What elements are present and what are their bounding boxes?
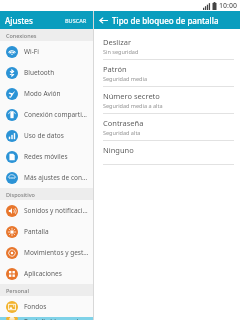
button[interactable]: Wi-Fi (0, 41, 93, 62)
button[interactable]: Conexión compartida. (0, 104, 93, 125)
button[interactable]: Fondos (0, 296, 93, 317)
staticText: Conexiones (6, 32, 37, 39)
staticText: Pantalla (24, 227, 49, 236)
staticText: Personal (6, 287, 29, 294)
staticText: Sin seguridad (103, 48, 139, 55)
button[interactable]: Uso de datos (0, 125, 93, 146)
button[interactable]: Número secreto (94, 87, 240, 113)
button[interactable]: Bluetooth (0, 62, 93, 83)
staticText: Conexión compartida. (24, 110, 90, 119)
staticText: Movimientos y gestos (24, 248, 90, 257)
button[interactable]: Deslizar (94, 33, 240, 59)
staticText: Patrón (103, 64, 127, 74)
staticText: Seguridad media (103, 75, 148, 82)
staticText: Uso de datos (24, 131, 64, 140)
staticText: Deslizar (103, 37, 131, 47)
staticText: Bluetooth (24, 68, 55, 77)
button[interactable]: Back (94, 11, 112, 29)
staticText: Sonidos y notificaciones (24, 206, 90, 215)
button[interactable]: Aplicaciones (0, 263, 93, 284)
staticText: 10:00 (219, 1, 237, 11)
button[interactable]: BUSCAR (64, 15, 88, 26)
button[interactable]: Redes móviles (0, 146, 93, 167)
staticText: Ninguno (103, 145, 134, 155)
button[interactable]: Pantalla (0, 221, 93, 242)
staticText: Ajustes (5, 15, 33, 26)
button[interactable]: Modo Avión (0, 83, 93, 104)
button[interactable]: Patrón (94, 60, 240, 86)
button[interactable]: Sonidos y notificaciones (0, 200, 93, 221)
staticText: BUSCAR (65, 17, 87, 24)
staticText: Modo Avión (24, 89, 61, 98)
staticText: Tipo de bloqueo de pantalla (112, 15, 219, 26)
staticText: Número secreto (103, 91, 160, 101)
button[interactable]: Pantalla bloqueo/segu. (0, 317, 93, 320)
staticText: Pantalla bloqueo/segu. (24, 317, 90, 320)
staticText: Seguridad alta (103, 129, 141, 136)
staticText: Aplicaciones (24, 269, 62, 278)
button[interactable]: Contraseña (94, 114, 240, 140)
staticText: Dispositivo (6, 191, 35, 198)
staticText: Más ajustes de conexi. (24, 173, 90, 182)
staticText: Wi-Fi (24, 47, 39, 56)
staticText: Fondos (24, 302, 47, 311)
button[interactable]: Más ajustes de conexi. (0, 167, 93, 188)
staticText: Redes móviles (24, 152, 68, 161)
button[interactable]: Ninguno (94, 141, 240, 164)
staticText: Contraseña (103, 118, 144, 128)
staticText: Seguridad media a alta (103, 102, 163, 109)
button[interactable]: Movimientos y gestos (0, 242, 93, 263)
